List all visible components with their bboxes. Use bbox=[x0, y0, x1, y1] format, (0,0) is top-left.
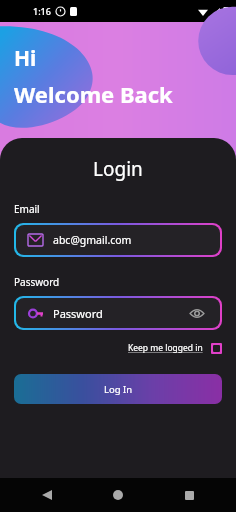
staticText: Password bbox=[53, 306, 103, 321]
button[interactable]: Log In bbox=[14, 374, 222, 404]
button[interactable]: Show password bbox=[186, 302, 208, 324]
button[interactable]: Home bbox=[105, 482, 131, 508]
staticText: 1:16 bbox=[33, 5, 51, 17]
staticText: Email bbox=[14, 202, 40, 216]
staticText: Password bbox=[14, 275, 60, 289]
staticText: Hi bbox=[14, 44, 37, 73]
button[interactable]: Back bbox=[34, 482, 60, 508]
staticText: Login bbox=[93, 156, 143, 182]
staticText: Log In bbox=[104, 383, 133, 396]
staticText: abc@gmail.com bbox=[53, 233, 132, 247]
staticText: Welcome Back bbox=[14, 79, 173, 109]
staticText: Keep me logged in bbox=[128, 342, 203, 354]
button[interactable]: Recents bbox=[176, 482, 202, 508]
button[interactable]: Keep me logged in bbox=[14, 342, 222, 354]
button[interactable]: Password bbox=[16, 298, 220, 328]
button[interactable]: abc@gmail.com bbox=[16, 225, 220, 255]
